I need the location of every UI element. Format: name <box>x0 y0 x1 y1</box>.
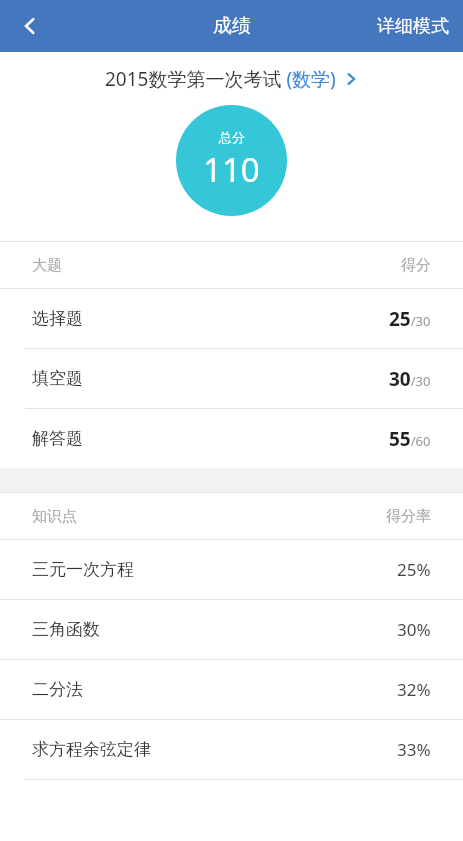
button[interactable]: 三角函数 <box>0 600 463 659</box>
staticText: 30% <box>397 618 431 641</box>
staticText: 知识点 <box>32 507 77 526</box>
staticText: 33% <box>397 738 431 761</box>
button[interactable]: 二分法 <box>0 660 463 719</box>
button[interactable]: 2015数学第一次考试 (数学) <box>97 62 366 96</box>
staticText: 2015数学第一次考试 (数学) <box>105 66 336 92</box>
button[interactable]: 解答题 <box>0 409 463 468</box>
button[interactable]: 求方程余弦定律 <box>0 720 463 779</box>
staticText: 总分 <box>219 129 245 145</box>
button[interactable]: 填空题 <box>0 349 463 408</box>
staticText: 选择题 <box>32 308 83 329</box>
staticText: 110 <box>203 147 260 192</box>
staticText: 55/60 <box>389 426 431 452</box>
staticText: 30/30 <box>389 366 431 392</box>
staticText: 三元一次方程 <box>32 559 134 580</box>
staticText: 详细模式 <box>377 15 449 38</box>
staticText: 三角函数 <box>32 619 100 640</box>
staticText: 25% <box>397 558 431 581</box>
staticText: 32% <box>397 678 431 701</box>
staticText: 填空题 <box>32 368 83 389</box>
button[interactable]: Back <box>0 0 60 52</box>
button[interactable]: 详细模式 <box>377 0 449 52</box>
staticText: 25/30 <box>389 306 431 332</box>
staticText: 解答题 <box>32 428 83 449</box>
staticText: 得分 <box>401 256 431 275</box>
staticText: 求方程余弦定律 <box>32 739 151 760</box>
button[interactable]: 选择题 <box>0 289 463 348</box>
staticText: 得分率 <box>386 507 431 526</box>
staticText: 成绩 <box>213 14 251 38</box>
staticText: 二分法 <box>32 679 83 700</box>
staticText: 大题 <box>32 256 62 275</box>
button[interactable]: 三元一次方程 <box>0 540 463 599</box>
